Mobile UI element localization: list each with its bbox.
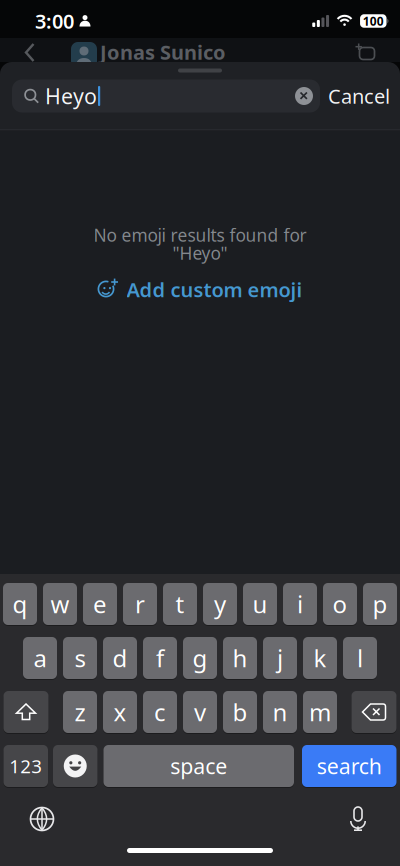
staticText: k [313,642,326,674]
button[interactable]: k [303,637,337,679]
staticText: 123 [9,754,42,778]
button[interactable]: y [203,583,237,625]
staticText: h [232,642,247,674]
staticText: w [50,588,69,620]
staticText: d [112,642,127,674]
button[interactable]: Emoji [53,745,97,787]
staticText: "Heyo" [172,241,227,264]
button[interactable]: d [103,637,137,679]
button[interactable]: b [223,691,257,733]
button[interactable]: Heyo [12,79,320,112]
button[interactable]: t [163,583,197,625]
button[interactable]: q [3,583,37,625]
button[interactable]: Add custom emoji [97,276,302,303]
staticText: f [156,642,164,674]
staticText: a [33,642,46,674]
button[interactable]: Back [24,43,35,61]
staticText: y [214,588,226,620]
staticText: i [297,588,303,620]
staticText: t [175,588,184,620]
button[interactable]: i [283,583,317,625]
staticText: u [252,588,267,620]
staticText: Heyo [45,82,97,110]
staticText: v [194,696,206,728]
button[interactable]: e [83,583,117,625]
button[interactable]: Delete [351,691,396,733]
staticText: n [272,696,287,728]
staticText: Cancel [328,83,390,109]
button[interactable]: Huddle [355,42,375,60]
staticText: search [317,752,382,780]
button[interactable]: Next keyboard [30,807,54,831]
staticText: e [93,588,107,620]
staticText: space [170,752,227,780]
button[interactable]: f [143,637,177,679]
staticText: No emoji results found for [93,223,306,246]
button[interactable]: Cancel [328,83,390,109]
staticText: g [192,642,207,674]
staticText: p [372,588,387,620]
button[interactable]: s [63,637,97,679]
staticText: b [232,696,247,728]
staticText: q [12,588,27,620]
staticText: z [74,696,85,728]
button[interactable]: Search [302,745,396,787]
staticText: c [154,696,166,728]
button[interactable]: space [103,745,294,787]
button[interactable]: z [63,691,97,733]
button[interactable]: o [323,583,357,625]
button[interactable]: Dictation [349,806,367,831]
staticText: m [309,696,331,728]
button[interactable]: n [263,691,297,733]
button[interactable]: Shift [3,691,48,733]
button[interactable]: h [223,637,257,679]
staticText: l [357,642,363,674]
button[interactable]: c [143,691,177,733]
staticText: Add custom emoji [126,276,302,303]
button[interactable]: 123 [3,745,48,787]
staticText: Jonas Sunico [100,39,226,65]
staticText: s [74,642,85,674]
button[interactable]: r [123,583,157,625]
staticText: 100 [363,13,384,29]
staticText: o [332,588,347,620]
button[interactable]: v [183,691,217,733]
button[interactable]: j [263,637,297,679]
button[interactable]: l [343,637,377,679]
staticText: r [135,588,145,620]
button[interactable]: g [183,637,217,679]
button[interactable]: x [103,691,137,733]
button[interactable]: m [303,691,337,733]
button[interactable]: w [43,583,77,625]
button[interactable]: Clear text [295,87,313,105]
button[interactable]: p [363,583,397,625]
staticText: j [277,642,283,674]
button[interactable]: u [243,583,277,625]
button[interactable]: a [23,637,57,679]
staticText: 3:00 [35,8,74,34]
staticText: x [113,696,126,728]
